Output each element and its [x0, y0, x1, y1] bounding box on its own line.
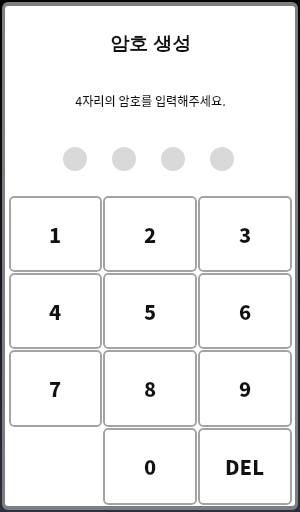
staticText: 0: [144, 452, 157, 481]
button[interactable]: 5: [103, 273, 197, 349]
button[interactable]: 1: [9, 196, 102, 272]
staticText: 8: [144, 374, 157, 403]
staticText: 7: [49, 374, 62, 403]
staticText: 1: [49, 220, 62, 249]
button[interactable]: 9: [198, 350, 292, 427]
staticText: 4: [49, 297, 62, 326]
button[interactable]: 3: [198, 196, 292, 272]
staticText: 3: [239, 220, 252, 249]
button[interactable]: DEL: [198, 428, 292, 505]
staticText: 2: [144, 220, 157, 249]
staticText: DEL: [225, 452, 265, 481]
staticText: 암호 생성: [110, 30, 191, 56]
button[interactable]: 4: [9, 273, 102, 349]
button[interactable]: 2: [103, 196, 197, 272]
staticText: 4자리의 암호를 입력해주세요.: [75, 92, 226, 110]
button[interactable]: 7: [9, 350, 102, 427]
staticText: 9: [239, 374, 252, 403]
staticText: 6: [239, 297, 252, 326]
button[interactable]: 0: [103, 428, 197, 505]
button[interactable]: 8: [103, 350, 197, 427]
button[interactable]: 6: [198, 273, 292, 349]
staticText: 5: [144, 297, 157, 326]
